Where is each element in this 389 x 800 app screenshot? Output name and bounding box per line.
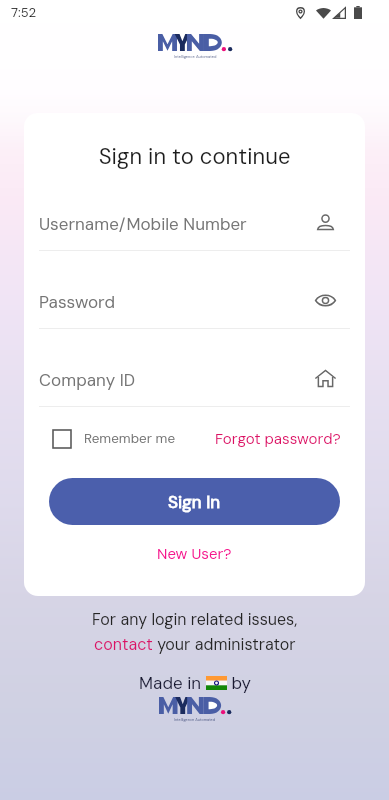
staticText: Company ID <box>39 369 314 391</box>
staticText: Sign In <box>168 491 221 513</box>
staticText: Password <box>39 291 314 313</box>
staticText: For any login related issues, <box>92 609 298 630</box>
staticText: Intelligence Automated <box>174 717 216 722</box>
button[interactable]: New User? <box>24 544 365 564</box>
staticText: Made in <box>139 672 206 694</box>
staticText: by <box>227 672 251 694</box>
staticText: Forgot password? <box>215 429 341 449</box>
staticText: contact your administrator <box>94 634 296 655</box>
staticText: Intelligence Automated <box>174 54 217 59</box>
staticText: 7:52 <box>11 4 37 21</box>
staticText: Username/Mobile Number <box>39 213 314 235</box>
button[interactable]: Username/Mobile Number <box>39 208 350 250</box>
staticText: Sign in to continue <box>24 142 365 171</box>
button[interactable]: Sign In <box>49 478 340 525</box>
button[interactable]: Company ID <box>39 364 350 406</box>
button[interactable]: Company <box>314 367 337 390</box>
button[interactable]: Forgot password? <box>215 429 341 449</box>
button[interactable]: Show password <box>314 289 337 312</box>
button[interactable]: Remember me <box>53 430 176 448</box>
staticText: Remember me <box>84 430 176 448</box>
button[interactable]: User <box>314 211 337 234</box>
staticText: New User? <box>157 544 232 564</box>
button[interactable]: Password <box>39 286 350 328</box>
